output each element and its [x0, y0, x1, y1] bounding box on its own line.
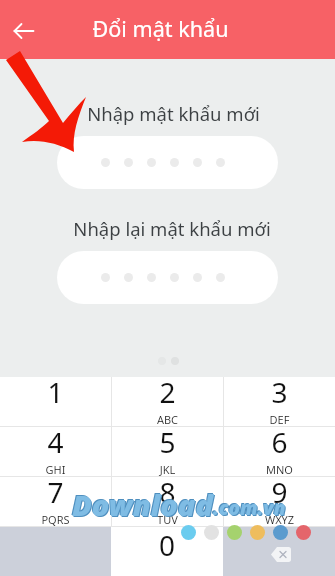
button[interactable]: Back — [2, 9, 46, 53]
staticText: 5 — [112, 423, 223, 461]
button[interactable]: 8 — [112, 477, 223, 526]
staticText: Nhập mật khẩu mới — [87, 101, 260, 126]
staticText: PQRS — [0, 512, 111, 527]
staticText: Nhập lại mật khẩu mới — [73, 216, 271, 241]
button[interactable]: 4 — [0, 427, 111, 476]
button[interactable]: 7 — [0, 477, 111, 526]
staticText: .com.vn — [212, 494, 285, 520]
staticText: Đổi mật khẩu — [92, 14, 229, 43]
button[interactable]: 2 — [112, 377, 223, 426]
staticText: GHI — [0, 462, 111, 477]
staticText: WXYZ — [224, 512, 335, 527]
staticText: 4 — [0, 423, 111, 461]
staticText: Download — [73, 486, 214, 525]
staticText: JKL — [112, 462, 223, 477]
staticText: 6 — [224, 423, 335, 461]
staticText: 1 — [0, 373, 111, 411]
staticText: DEF — [224, 412, 335, 427]
staticText: TUV — [112, 512, 223, 527]
button[interactable]: 6 — [224, 427, 335, 476]
staticText: Download — [71, 484, 212, 523]
staticText: 0 — [111, 526, 223, 564]
button[interactable]: 5 — [112, 427, 223, 476]
staticText: Download — [72, 485, 213, 524]
staticText: 3 — [224, 373, 335, 411]
button[interactable] — [57, 251, 278, 304]
button[interactable]: 3 — [224, 377, 335, 426]
button[interactable] — [57, 136, 278, 189]
staticText: 2 — [112, 373, 223, 411]
staticText: ABC — [112, 412, 223, 427]
button[interactable]: 1 — [0, 377, 111, 426]
staticText: .com.vn — [214, 496, 287, 522]
staticText: MNO — [224, 462, 335, 477]
staticText: 8 — [112, 473, 223, 511]
button[interactable]: 9 — [224, 477, 335, 526]
staticText: 7 — [0, 473, 111, 511]
button[interactable]: 0 — [111, 527, 223, 576]
staticText: .com.vn — [213, 495, 286, 521]
button[interactable]: Backspace — [223, 527, 335, 576]
staticText: 9 — [224, 473, 335, 511]
